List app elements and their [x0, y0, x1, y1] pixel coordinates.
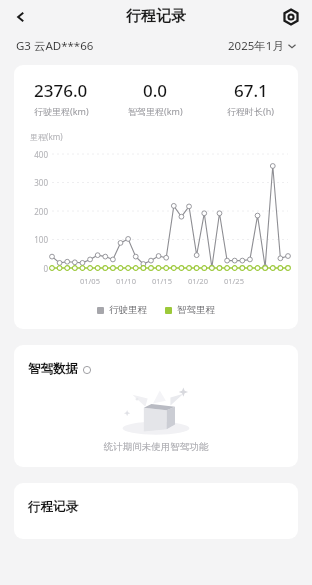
staticText: 智驾里程 — [177, 304, 215, 316]
staticText: 0.0 — [143, 79, 168, 102]
staticText: 行驶里程 — [109, 304, 147, 316]
button[interactable]: Settings — [275, 1, 307, 33]
staticText: 智驾数据 — [28, 361, 78, 377]
staticText: 01/25 — [224, 276, 244, 286]
staticText: 100 — [18, 234, 48, 245]
staticText: 67.1 — [234, 79, 268, 102]
staticText: 2376.0 — [34, 79, 88, 102]
button[interactable]: 2025年1月 — [228, 38, 296, 54]
staticText: 里程(km) — [30, 131, 63, 142]
staticText: 400 — [18, 149, 48, 160]
staticText: 行程记录 — [126, 7, 186, 26]
staticText: 行驶里程(km) — [34, 105, 89, 117]
staticText: 01/20 — [188, 276, 208, 286]
staticText: 行程记录 — [28, 499, 78, 515]
staticText: G3 云AD***66 — [16, 38, 94, 54]
staticText: 01/05 — [80, 276, 100, 286]
staticText: 2025年1月 — [228, 38, 284, 54]
button[interactable]: Info — [81, 364, 92, 375]
staticText: 300 — [18, 177, 48, 188]
staticText: 统计期间未使用智驾功能 — [14, 441, 298, 453]
staticText: 0 — [18, 263, 48, 274]
button[interactable]: Back — [4, 0, 38, 33]
staticText: 01/10 — [116, 276, 136, 286]
staticText: 行程时长(h) — [227, 105, 274, 117]
staticText: 200 — [18, 206, 48, 217]
staticText: 智驾里程(km) — [128, 105, 183, 117]
staticText: 01/15 — [152, 276, 172, 286]
